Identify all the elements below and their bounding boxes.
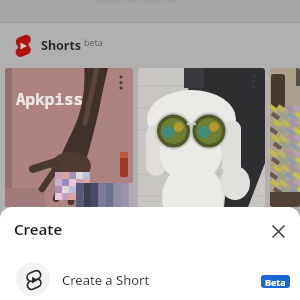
staticText: Apkpiss: [16, 88, 84, 110]
staticText: Beta: [265, 276, 286, 288]
staticText: Create: [14, 219, 63, 239]
button[interactable]: Create a Short: [0, 257, 300, 300]
button[interactable]: Shorts: [0, 23, 300, 67]
staticText: Shorts: [41, 37, 82, 54]
button[interactable]: [270, 68, 300, 207]
staticText: Download from Apkpiss com: [95, 0, 176, 5]
button[interactable]: [264, 217, 292, 245]
staticText: beta: [84, 36, 103, 48]
staticText: Create a Short: [62, 271, 150, 289]
button[interactable]: [138, 68, 265, 207]
button[interactable]: Apkpiss: [5, 68, 133, 207]
